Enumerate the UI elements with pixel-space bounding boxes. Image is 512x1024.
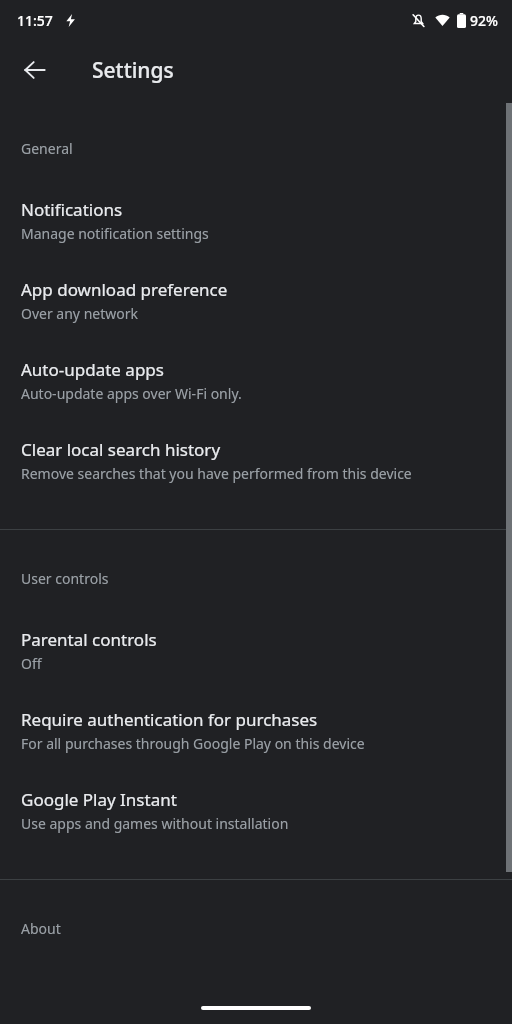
button[interactable]: Notifications (0, 158, 512, 243)
staticText: 92% (470, 11, 498, 30)
staticText: Over any network (21, 304, 138, 323)
staticText: Auto-update apps over Wi-Fi only. (21, 384, 242, 403)
staticText: Parental controls (21, 628, 157, 651)
staticText: Manage notification settings (21, 224, 209, 243)
button[interactable]: Back (13, 48, 57, 92)
staticText: For all purchases through Google Play on… (21, 734, 365, 753)
button[interactable]: Google Play Instant (0, 753, 512, 833)
button[interactable]: Parental controls (0, 588, 512, 673)
staticText: Require authentication for purchases (21, 708, 318, 731)
button[interactable]: App download preference (0, 243, 512, 323)
staticText: 11:57 (17, 11, 53, 30)
staticText: Remove searches that you have performed … (21, 464, 412, 483)
staticText: Google Play Instant (21, 788, 177, 811)
button[interactable]: Require authentication for purchases (0, 673, 512, 753)
staticText: Off (21, 654, 42, 673)
staticText: Settings (92, 56, 174, 85)
staticText: General (21, 139, 73, 158)
staticText: Auto-update apps (21, 358, 164, 381)
staticText: Clear local search history (21, 438, 221, 461)
staticText: User controls (21, 569, 109, 588)
button[interactable]: Auto-update apps (0, 323, 512, 403)
staticText: Use apps and games without installation (21, 814, 289, 833)
staticText: App download preference (21, 278, 228, 301)
staticText: Notifications (21, 198, 123, 221)
staticText: About (21, 919, 61, 938)
button[interactable]: Clear local search history (0, 403, 512, 483)
